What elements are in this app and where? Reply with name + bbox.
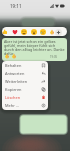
staticText: Behalten: [5, 63, 22, 68]
staticText: 19:05: [50, 55, 58, 59]
button[interactable]: More reactions: [54, 28, 62, 36]
button[interactable]: Laugh: [20, 28, 28, 36]
button[interactable]: Kopieren: [2, 85, 48, 93]
staticText: 19:11: [10, 3, 22, 9]
staticText: Löschen: [5, 95, 21, 100]
button[interactable]: Thanks: [48, 28, 56, 36]
staticText: Aber ist jetzt schon ein gelbes gefühl, …: [4, 39, 65, 56]
button[interactable]: Sad: [39, 28, 47, 36]
button[interactable]: Löschen: [2, 93, 48, 101]
button[interactable]: Love: [11, 28, 19, 36]
staticText: Mehr ...: [5, 103, 19, 108]
button[interactable]: Weiterleiten: [2, 77, 48, 85]
staticText: Kopieren: [5, 87, 22, 92]
button[interactable]: Behalten: [2, 61, 48, 69]
button[interactable]: Mehr ...: [2, 101, 48, 109]
staticText: Weiterleiten: [5, 79, 28, 84]
button[interactable]: Like: [2, 28, 9, 36]
button[interactable]: Antworten: [2, 69, 48, 77]
button[interactable]: Wow: [30, 28, 38, 36]
staticText: Antworten: [5, 71, 25, 76]
